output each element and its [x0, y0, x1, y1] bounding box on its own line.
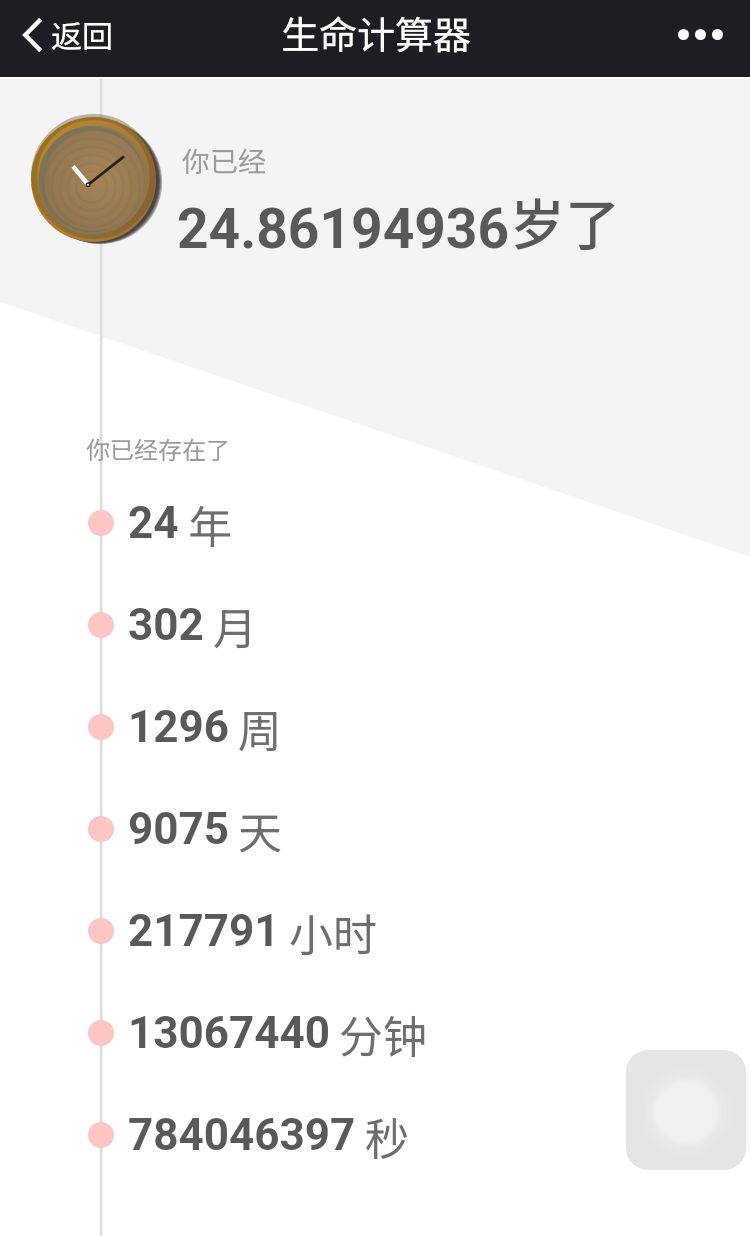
button[interactable]: More options [656, 13, 750, 56]
button[interactable]: Menu [626, 1050, 746, 1170]
button[interactable]: 9075 [0, 791, 750, 867]
staticText: 24 [128, 497, 179, 549]
staticText: 返回 [51, 12, 113, 57]
button[interactable]: 217791 [0, 893, 750, 969]
staticText: 302 [128, 599, 204, 651]
staticText: 月 [213, 594, 257, 658]
staticText: 秒 [365, 1104, 409, 1168]
staticText: 岁了 [510, 181, 621, 261]
button[interactable]: 13067440 [0, 995, 750, 1071]
staticText: 9075 [128, 803, 229, 855]
staticText: 24.86194936 [177, 197, 510, 262]
button[interactable]: 返回 [0, 2, 127, 67]
staticText: 分钟 [339, 1002, 427, 1066]
staticText: 天 [238, 798, 282, 862]
button[interactable]: 784046397 [0, 1097, 750, 1173]
button[interactable]: 302 [0, 587, 750, 663]
button[interactable]: 24 [0, 485, 750, 561]
staticText: 你已经存在了 [86, 431, 230, 466]
staticText: 生命计算器 [281, 5, 472, 60]
staticText: 年 [188, 492, 232, 556]
staticText: 13067440 [128, 1007, 330, 1059]
staticText: 你已经 [182, 140, 267, 181]
button[interactable]: 1296 [0, 689, 750, 765]
staticText: 周 [238, 696, 282, 760]
staticText: 小时 [289, 900, 377, 964]
staticText: 784046397 [128, 1109, 356, 1161]
staticText: 1296 [128, 701, 229, 753]
staticText: 217791 [128, 905, 280, 957]
